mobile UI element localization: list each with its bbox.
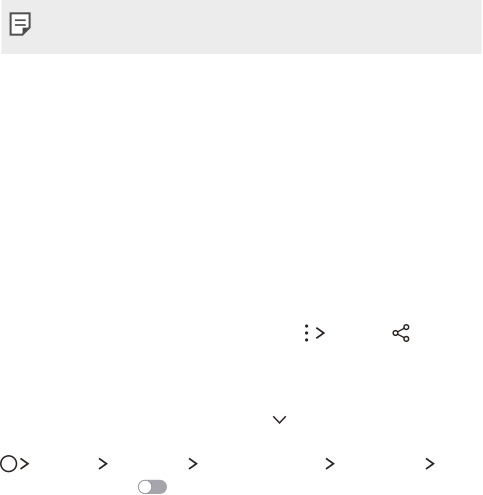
button[interactable]: Account — [1, 453, 29, 475]
button[interactable]: Show more — [262, 409, 296, 430]
button[interactable]: Search — [325, 453, 334, 475]
button[interactable]: Share — [393, 324, 409, 341]
button[interactable]: Library — [98, 453, 107, 475]
button[interactable]: Note — [1, 0, 37, 54]
button[interactable]: More options — [305, 322, 325, 343]
button[interactable]: Browse — [188, 453, 197, 475]
button[interactable]: Toggle — [138, 480, 167, 494]
button[interactable]: Settings — [425, 453, 434, 475]
